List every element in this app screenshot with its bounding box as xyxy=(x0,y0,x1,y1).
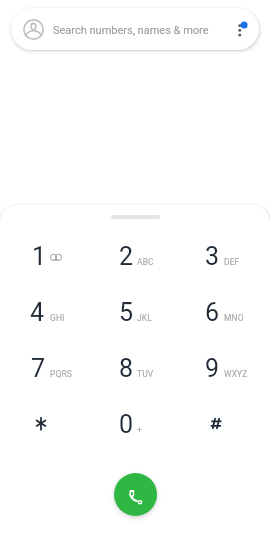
staticText: WXYZ xyxy=(224,369,248,379)
button[interactable]: Search numbers, names & more xyxy=(11,8,259,50)
staticText: 9 xyxy=(205,354,220,383)
staticText: 0 xyxy=(119,410,134,439)
staticText: JKL xyxy=(137,313,152,323)
button[interactable]: 3 xyxy=(180,228,270,284)
staticText: 7 xyxy=(31,354,46,383)
button[interactable] xyxy=(0,396,90,452)
staticText: TUV xyxy=(137,369,154,379)
button[interactable]: 1 xyxy=(0,228,90,284)
staticText: GHI xyxy=(50,313,65,323)
button[interactable]: 7 xyxy=(0,340,90,396)
staticText: 1 xyxy=(32,242,47,271)
staticText: 2 xyxy=(119,242,134,271)
staticText: + xyxy=(137,425,142,435)
staticText: MNO xyxy=(224,313,244,323)
staticText: 3 xyxy=(205,242,220,271)
button[interactable]: 8 xyxy=(90,340,180,396)
button[interactable]: 2 xyxy=(90,228,180,284)
button[interactable]: 6 xyxy=(180,284,270,340)
button[interactable] xyxy=(180,396,270,452)
staticText: 4 xyxy=(30,298,45,327)
staticText: 6 xyxy=(205,298,220,327)
button[interactable]: 5 xyxy=(90,284,180,340)
button[interactable]: More options xyxy=(225,16,251,42)
button[interactable]: 0 xyxy=(90,396,180,452)
staticText: DEF xyxy=(224,257,240,267)
staticText: ABC xyxy=(137,257,154,267)
button[interactable]: 9 xyxy=(180,340,270,396)
button[interactable]: 4 xyxy=(0,284,90,340)
staticText: Search numbers, names & more xyxy=(53,24,209,37)
staticText: PQRS xyxy=(50,369,72,379)
button[interactable]: Call xyxy=(114,473,157,516)
staticText: 8 xyxy=(119,354,134,383)
staticText: 5 xyxy=(119,298,134,327)
